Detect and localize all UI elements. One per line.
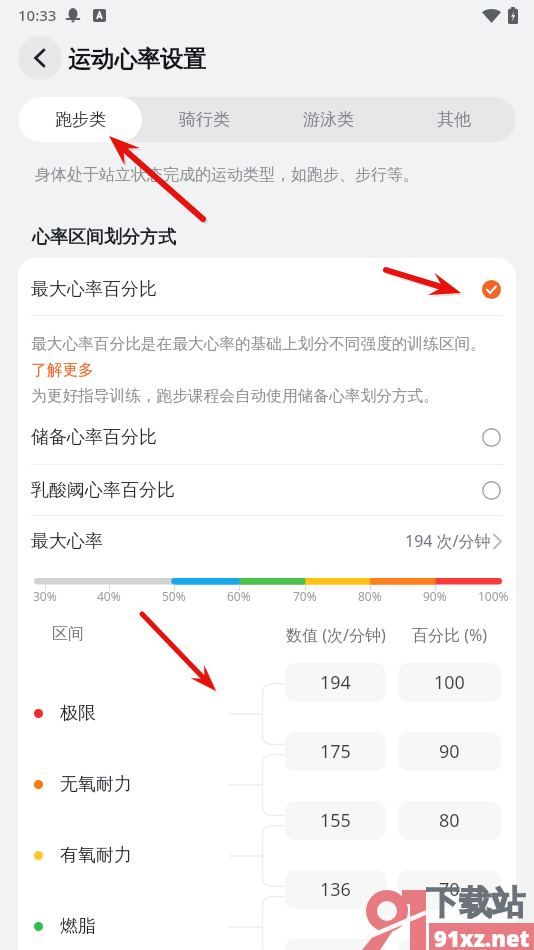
staticText: 70 bbox=[439, 877, 460, 902]
staticText: 燃脂 bbox=[60, 915, 96, 938]
staticText: 数值 (次/分钟) bbox=[286, 624, 386, 646]
staticText: 跑步类 bbox=[55, 109, 106, 130]
staticText: 其他 bbox=[437, 109, 471, 130]
staticText: 最大心率百分比 bbox=[31, 278, 157, 301]
staticText: 90% bbox=[423, 588, 447, 604]
staticText: 175 bbox=[320, 739, 351, 764]
staticText: 91xz.net bbox=[434, 923, 530, 950]
button[interactable]: 乳酸阈心率百分比 bbox=[18, 464, 516, 516]
staticText: 有氧耐力 bbox=[60, 844, 132, 867]
button[interactable]: 储备心率百分比 bbox=[18, 411, 516, 463]
button[interactable]: 跑步类 bbox=[18, 97, 142, 142]
staticText: 90 bbox=[439, 739, 460, 764]
staticText: 30% bbox=[33, 588, 57, 604]
staticText: 下载站 bbox=[426, 882, 525, 924]
staticText: 80 bbox=[439, 808, 460, 833]
staticText: 最大心率 bbox=[31, 530, 103, 553]
staticText: 为更好指导训练，跑步课程会自动使用储备心率划分方式。 bbox=[31, 386, 439, 406]
staticText: 区间 bbox=[52, 624, 84, 644]
staticText: 100 bbox=[434, 670, 465, 695]
staticText: 194 bbox=[320, 670, 351, 695]
staticText: 80% bbox=[358, 588, 382, 604]
staticText: 运动心率设置 bbox=[68, 45, 206, 74]
staticText: 10:33 bbox=[18, 5, 57, 25]
button[interactable]: 了解更多 bbox=[31, 360, 94, 380]
staticText: 100% bbox=[478, 588, 509, 604]
button[interactable]: 最大心率百分比 bbox=[18, 261, 516, 318]
staticText: 50% bbox=[162, 588, 186, 604]
button[interactable]: 骑行类 bbox=[142, 97, 266, 142]
button[interactable]: 最大心率 bbox=[18, 515, 516, 567]
staticText: 最大心率百分比是在最大心率的基础上划分不同强度的训练区间。 bbox=[31, 334, 486, 354]
staticText: 70% bbox=[293, 588, 317, 604]
staticText: 身体处于站立状态完成的运动类型，如跑步、步行等。 bbox=[35, 165, 419, 185]
button[interactable]: 其他 bbox=[391, 97, 516, 142]
staticText: 194 次/分钟 bbox=[405, 530, 491, 552]
staticText: 无氧耐力 bbox=[60, 773, 132, 796]
staticText: 百分比 (%) bbox=[412, 624, 488, 646]
staticText: 40% bbox=[97, 588, 121, 604]
staticText: 乳酸阈心率百分比 bbox=[31, 479, 175, 502]
staticText: 136 bbox=[320, 877, 351, 902]
button[interactable]: Back bbox=[18, 36, 62, 80]
staticText: 游泳类 bbox=[303, 109, 354, 130]
staticText: 极限 bbox=[60, 702, 96, 725]
staticText: 155 bbox=[320, 808, 351, 833]
staticText: 骑行类 bbox=[179, 109, 230, 130]
staticText: 储备心率百分比 bbox=[31, 426, 157, 449]
button[interactable]: 游泳类 bbox=[266, 97, 391, 142]
staticText: 心率区间划分方式 bbox=[32, 226, 176, 249]
staticText: 60% bbox=[227, 588, 251, 604]
